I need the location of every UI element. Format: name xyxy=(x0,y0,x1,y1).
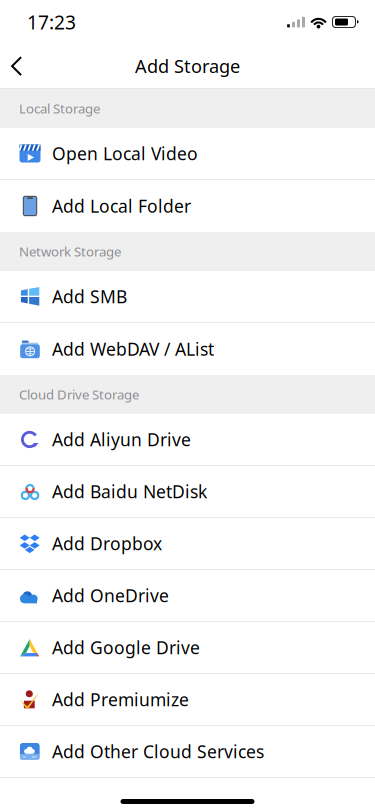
button[interactable]: Add OneDrive xyxy=(0,570,375,622)
button[interactable]: Open Local Video xyxy=(0,128,375,180)
staticText: 17:23 xyxy=(27,9,76,35)
button[interactable]: Add WebDAV / AList xyxy=(0,323,375,375)
staticText: Add Storage xyxy=(135,54,240,78)
button[interactable]: Add Local Folder xyxy=(0,180,375,232)
staticText: Add Dropbox xyxy=(52,532,162,555)
staticText: Cloud Drive Storage xyxy=(19,385,139,403)
staticText: Open Local Video xyxy=(52,142,198,165)
staticText: Add WebDAV / AList xyxy=(52,337,214,361)
staticText: Add Baidu NetDisk xyxy=(52,480,207,503)
button[interactable]: Add Aliyun Drive xyxy=(0,414,375,466)
staticText: Local Storage xyxy=(19,99,100,117)
button[interactable]: Add Dropbox xyxy=(0,518,375,570)
staticText: Add Local Folder xyxy=(52,194,191,218)
button[interactable]: Add Premiumize xyxy=(0,674,375,726)
button[interactable]: Add SMB xyxy=(0,271,375,323)
staticText: Add SMB xyxy=(52,285,127,308)
staticText: Add Aliyun Drive xyxy=(52,428,191,451)
staticText: Add Other Cloud Services xyxy=(52,740,264,763)
staticText: Network Storage xyxy=(19,242,121,260)
button[interactable]: Back xyxy=(0,44,53,88)
button[interactable]: Add Baidu NetDisk xyxy=(0,466,375,518)
button[interactable]: Add Other Cloud Services xyxy=(0,726,375,778)
staticText: Add OneDrive xyxy=(52,584,169,607)
button[interactable]: Add Google Drive xyxy=(0,622,375,674)
staticText: Add Google Drive xyxy=(52,636,200,659)
staticText: Add Premiumize xyxy=(52,688,189,711)
